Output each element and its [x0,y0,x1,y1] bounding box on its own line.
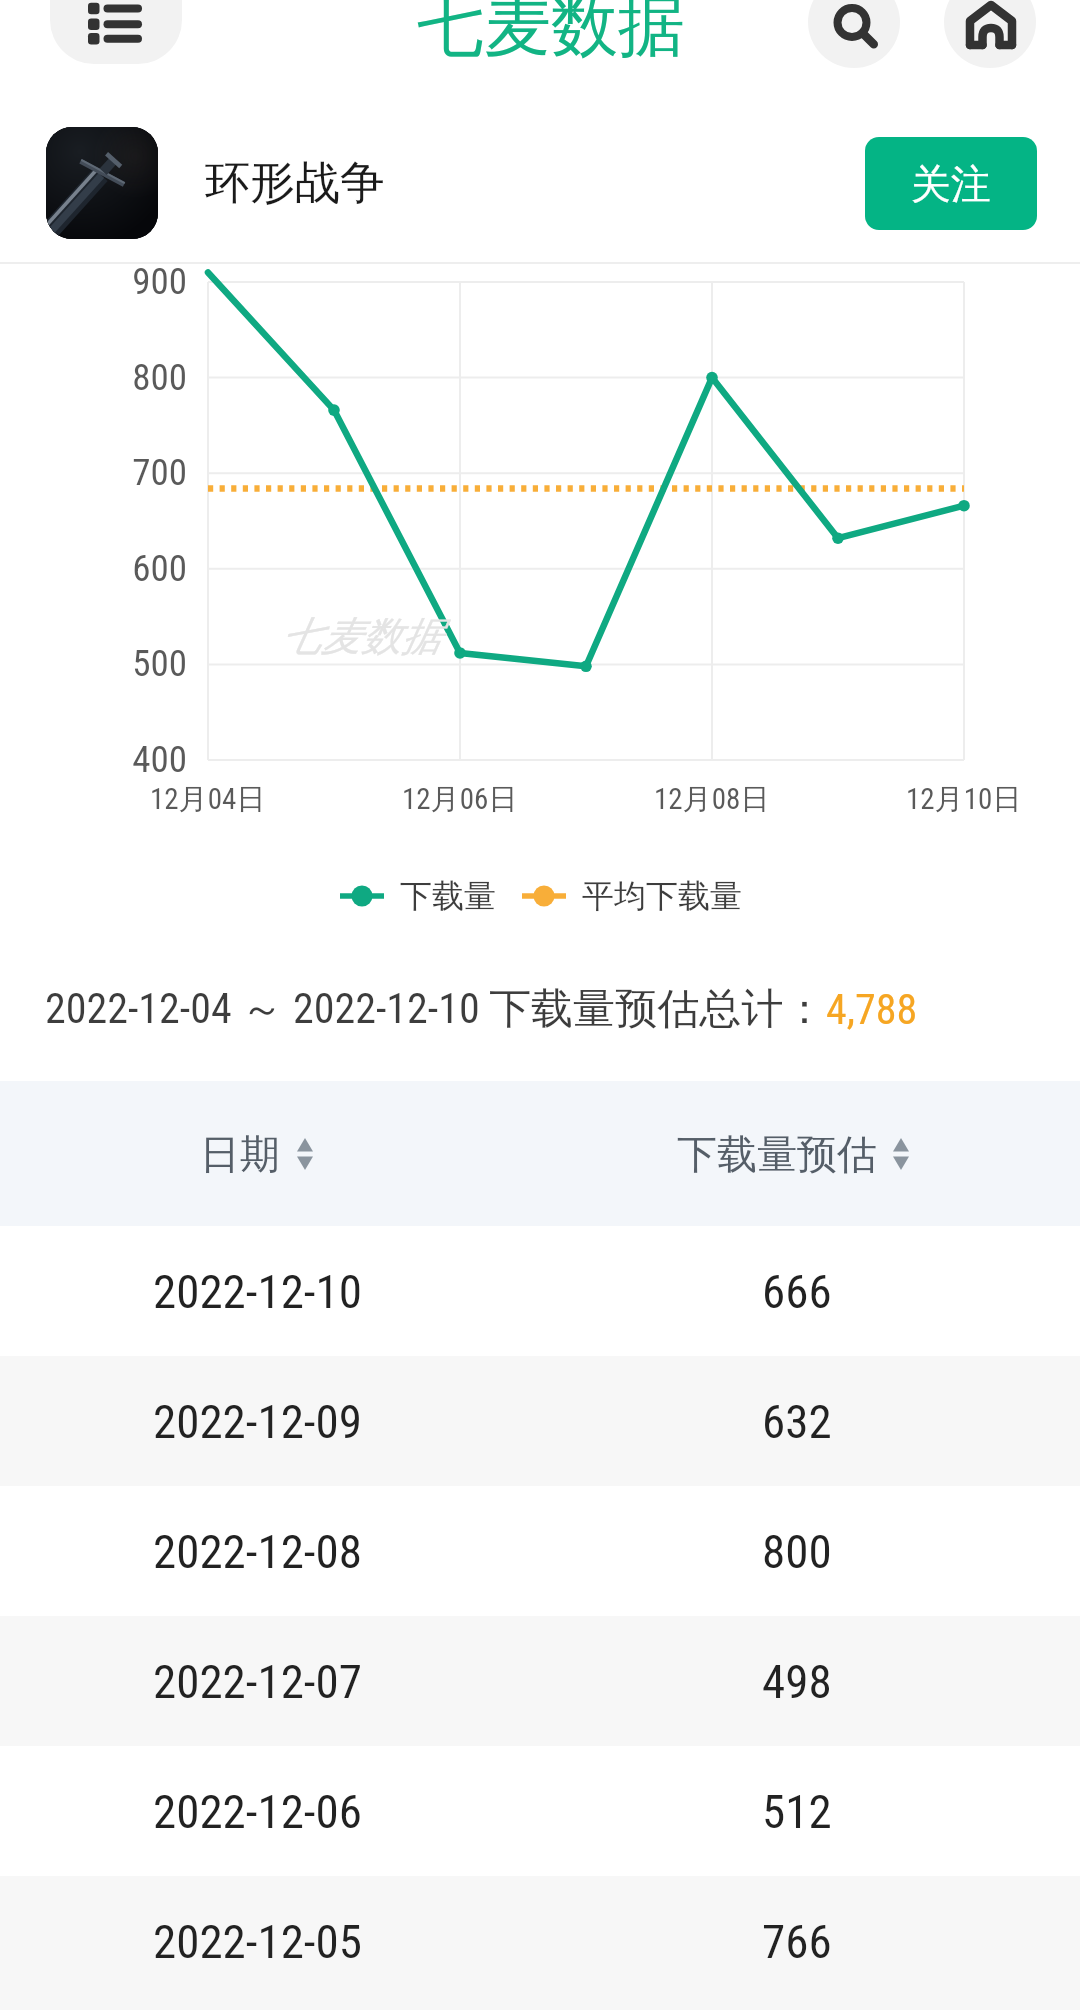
button[interactable]: 下载量 [340,876,496,916]
staticText: 12月04日 [150,781,266,818]
staticText: 平均下载量 [582,876,742,916]
staticText: 4,788 [826,985,918,1034]
staticText: 600 [71,547,187,590]
staticText: 800 [71,356,187,399]
staticText: 日期 [200,1129,280,1179]
staticText: 666 [762,1264,832,1319]
staticText: 七麦数据 [417,0,685,68]
button[interactable]: 2022-12-08 [0,1486,1080,1616]
button[interactable]: 2022-12-06 [0,1746,1080,1876]
staticText: 环形战争 [205,155,385,212]
staticText: 766 [762,1914,832,1969]
staticText: 500 [71,642,187,685]
staticText: 下载量 [400,876,496,916]
staticText: 2022-12-06 [153,1784,362,1839]
staticText: 2022-12-07 [153,1654,362,1709]
staticText: 2022-12-10 [153,1264,362,1319]
staticText: 2022-12-04 ～ 2022-12-10 下载量预估总计： [45,983,826,1036]
staticText: 2022-12-09 [153,1394,362,1449]
button[interactable]: 关注 [865,137,1037,230]
button[interactable]: 环形战争 [0,118,1080,248]
button[interactable]: 日期 [0,1081,540,1226]
button[interactable]: 2022-12-10 [0,1226,1080,1356]
staticText: 498 [762,1654,832,1709]
button[interactable]: Menu [50,0,182,64]
button[interactable]: 七麦数据 [417,0,685,68]
staticText: 12月10日 [906,781,1022,818]
staticText: 12月08日 [654,781,770,818]
button[interactable]: 下载量预估 [540,1081,1080,1226]
staticText: 632 [762,1394,832,1449]
button[interactable]: 2022-12-07 [0,1616,1080,1746]
staticText: 12月06日 [402,781,518,818]
button[interactable]: 2022-12-09 [0,1356,1080,1486]
staticText: 2022-12-08 [153,1524,362,1579]
staticText: 下载量预估 [677,1129,877,1179]
staticText: 2022-12-05 [153,1914,362,1969]
staticText: 七麦数据 [281,611,441,661]
staticText: 400 [71,738,187,781]
staticText: 512 [762,1784,832,1839]
button[interactable]: Home [944,0,1036,68]
staticText: 800 [762,1524,832,1579]
staticText: 关注 [911,159,991,209]
button[interactable]: 2022-12-05 [0,1876,1080,2006]
button[interactable]: Search [808,0,900,68]
staticText: 700 [71,451,187,494]
staticText: 900 [71,260,187,303]
button[interactable]: 平均下载量 [522,876,742,916]
